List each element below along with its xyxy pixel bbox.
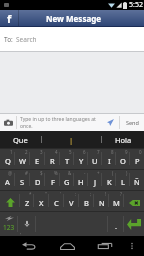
button[interactable]: '	[49, 190, 64, 211]
staticText: )	[126, 170, 128, 176]
staticText: 3	[40, 149, 43, 155]
staticText: +	[97, 170, 100, 176]
button[interactable]: 5	[60, 148, 74, 169]
button[interactable]: 0	[130, 148, 144, 169]
button[interactable]: To:	[0, 27, 144, 51]
button[interactable]: &	[60, 169, 74, 190]
button[interactable]: :	[64, 190, 79, 211]
staticText: 7	[97, 149, 100, 155]
button[interactable]: 8	[102, 148, 116, 169]
staticText: :	[75, 191, 77, 197]
staticText: To:	[4, 35, 13, 44]
button[interactable]: 3	[30, 148, 45, 169]
staticText: 6	[83, 149, 86, 155]
staticText: T	[65, 156, 70, 166]
button[interactable]: More options	[124, 236, 144, 256]
button[interactable]: 6	[74, 148, 88, 169]
staticText: Hola	[115, 135, 132, 145]
button[interactable]: Hola	[102, 131, 144, 148]
button[interactable]: .	[108, 211, 124, 236]
button[interactable]: Shift	[0, 190, 20, 211]
staticText: ?	[120, 191, 122, 197]
button[interactable]: 1	[0, 148, 15, 169]
button[interactable]: Facebook home	[0, 10, 18, 26]
staticText: J	[94, 177, 97, 187]
button[interactable]: Home	[48, 236, 86, 256]
staticText: (	[112, 170, 114, 176]
button[interactable]: Back	[9, 236, 48, 256]
staticText: |	[69, 135, 74, 145]
button[interactable]: %	[45, 169, 60, 190]
staticText: Y	[79, 156, 84, 166]
button[interactable]: Que	[0, 131, 41, 148]
button[interactable]: 4	[45, 148, 60, 169]
staticText: ;	[90, 191, 92, 197]
staticText: 123	[3, 223, 15, 232]
button[interactable]: 9	[116, 148, 130, 169]
button[interactable]: #	[15, 169, 30, 190]
staticText: !	[105, 191, 107, 197]
staticText: Q	[5, 156, 11, 166]
button[interactable]: $	[30, 169, 45, 190]
button[interactable]: Send	[120, 114, 144, 131]
staticText: Send	[126, 119, 139, 126]
staticText: I	[108, 156, 111, 166]
staticText: Type in up to three languages at once.	[20, 116, 102, 130]
button[interactable]: Ñ	[130, 169, 144, 190]
staticText: ,	[20, 229, 22, 236]
staticText: Search	[16, 35, 37, 44]
staticText: 0	[139, 149, 142, 155]
staticText: E	[35, 156, 40, 166]
staticText: A	[5, 177, 10, 187]
staticText: 4	[55, 149, 58, 155]
button[interactable]: Camera	[0, 114, 16, 131]
staticText: 2	[25, 149, 28, 155]
button[interactable]	[36, 211, 108, 236]
button[interactable]: "	[34, 190, 49, 211]
staticText: Que	[13, 135, 28, 145]
button[interactable]: +	[88, 169, 102, 190]
button[interactable]: Backspace	[124, 190, 144, 211]
button[interactable]: !	[94, 190, 109, 211]
staticText: L	[121, 177, 125, 187]
button[interactable]: -	[74, 169, 88, 190]
button[interactable]: ?	[109, 190, 124, 211]
staticText: U	[92, 156, 98, 166]
staticText: -	[84, 170, 86, 176]
staticText: D	[35, 177, 41, 187]
button[interactable]: Send sticker	[102, 114, 119, 131]
staticText: 8	[111, 149, 114, 155]
button[interactable]: 7	[88, 148, 102, 169]
staticText: V	[69, 198, 74, 208]
button[interactable]: ;	[79, 190, 94, 211]
button[interactable]: *	[20, 190, 34, 211]
staticText: 9	[125, 149, 128, 155]
button[interactable]: (	[102, 169, 116, 190]
staticText: @	[8, 170, 13, 176]
button[interactable]: Recent apps	[86, 236, 124, 256]
staticText: $	[40, 170, 43, 176]
staticText: G	[64, 177, 70, 187]
staticText: Z	[25, 198, 30, 208]
button[interactable]: 2	[15, 148, 30, 169]
staticText: S	[20, 177, 25, 187]
staticText: 1	[10, 149, 13, 155]
button[interactable]: Enter	[124, 211, 144, 236]
staticText: R	[50, 156, 55, 166]
button[interactable]: @	[0, 169, 15, 190]
staticText: W	[19, 156, 26, 166]
staticText: *	[29, 191, 32, 197]
button[interactable]: |	[42, 131, 101, 148]
staticText: 5	[69, 149, 72, 155]
staticText: 5:52	[129, 0, 143, 10]
staticText: Ñ	[134, 177, 140, 187]
staticText: .	[115, 221, 118, 231]
staticText: O	[120, 156, 126, 166]
staticText: f	[7, 11, 12, 26]
button[interactable]: Numbers and symbols	[0, 211, 18, 236]
staticText: F	[51, 177, 55, 187]
button[interactable]: Voice input	[18, 211, 36, 236]
button[interactable]: )	[116, 169, 130, 190]
staticText: #	[25, 170, 28, 176]
button[interactable]: Type in up to three languages at once.	[20, 116, 102, 130]
